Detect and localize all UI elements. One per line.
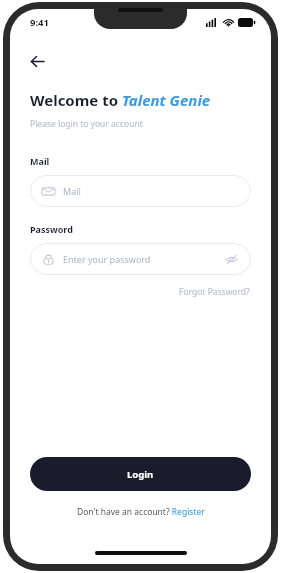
button[interactable]: Mail [30,175,251,207]
button[interactable]: Don't have an account? Register [74,503,208,521]
button[interactable]: Login [30,457,251,491]
button[interactable]: Show password [223,251,239,267]
button[interactable]: Forgot Password? [176,283,253,301]
staticText: Please login to your account [30,118,143,130]
staticText: Mail [63,185,81,197]
staticText: Forgot Password? [179,286,250,298]
button[interactable]: Back [22,46,52,76]
staticText: Don't have an account? Register [77,506,205,518]
staticText: Password [30,223,73,235]
staticText: Login [127,468,154,481]
staticText: Welcome to Talent Genie [30,90,211,110]
staticText: Mail [30,155,50,167]
button[interactable]: Enter your password [30,243,251,275]
staticText: 9:41 [30,16,49,29]
staticText: Enter your password [63,253,151,265]
